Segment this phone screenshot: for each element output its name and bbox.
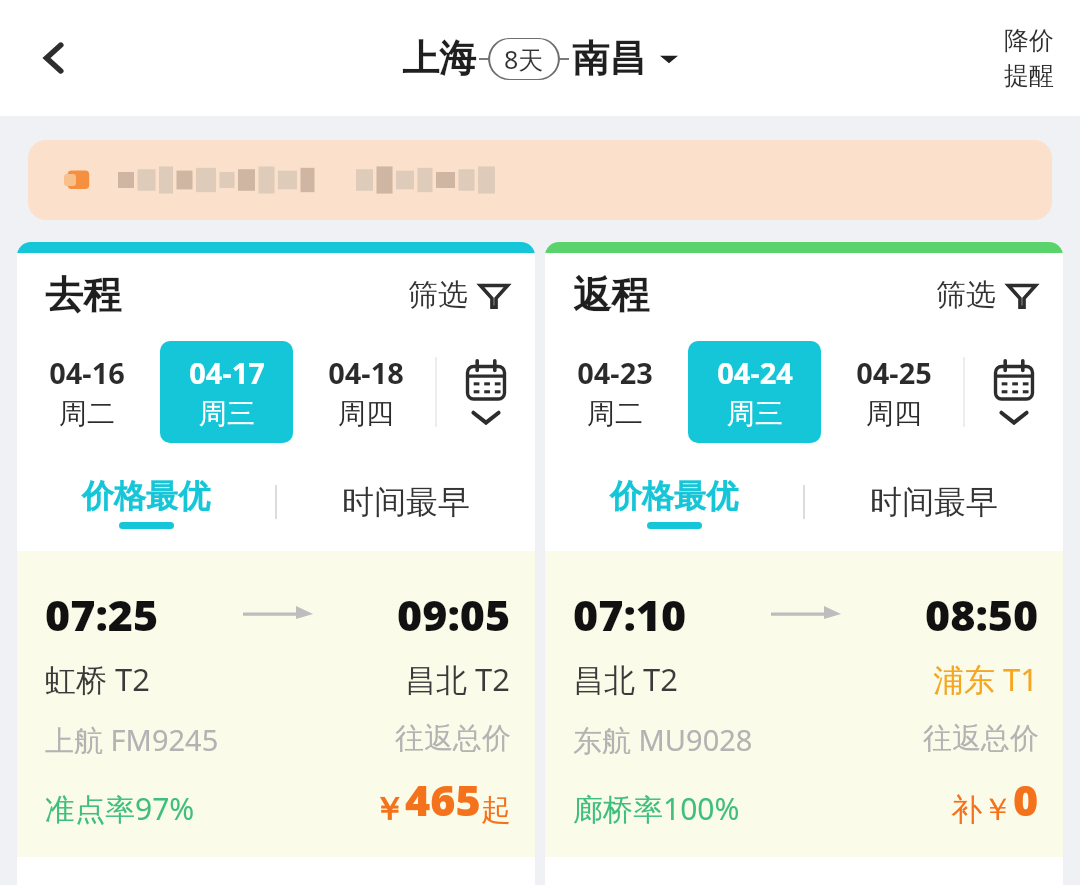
button[interactable]: 07:25 — [17, 551, 535, 857]
staticText: 8天 — [504, 42, 544, 76]
staticText: 周四 — [866, 396, 922, 431]
staticText: 04-23 — [577, 353, 653, 392]
button[interactable]: 时间最早 — [277, 463, 535, 541]
staticText: 降价 — [1004, 25, 1054, 56]
staticText: 04-18 — [328, 353, 404, 392]
staticText: 昌北 T2 — [405, 658, 511, 700]
staticText: 筛选 — [408, 276, 468, 314]
button[interactable]: 时间最早 — [805, 463, 1063, 541]
button[interactable]: 筛选 — [936, 276, 1039, 314]
staticText: 周四 — [338, 396, 394, 431]
button[interactable]: 上海 — [402, 35, 678, 82]
staticText: 上航 FM9245 — [45, 720, 219, 760]
button[interactable]: 降价 — [1004, 25, 1054, 91]
staticText: 浦东 T1 — [933, 658, 1039, 700]
button[interactable]: Calendar — [437, 341, 535, 443]
button[interactable]: 04-18 — [299, 341, 432, 443]
button[interactable]: 价格最优 — [17, 463, 275, 541]
staticText: 起 — [481, 791, 511, 829]
button[interactable]: 04-17 — [160, 341, 293, 443]
button[interactable]: 04-16 — [20, 341, 154, 443]
staticText: 准点率97% — [45, 788, 195, 829]
staticText: 往返总价 — [395, 720, 511, 757]
staticText: 465 — [405, 770, 481, 829]
staticText: 返程 — [573, 271, 649, 319]
staticText: 虹桥 T2 — [45, 658, 151, 700]
staticText: 往返总价 — [923, 720, 1039, 757]
staticText: 筛选 — [936, 276, 996, 314]
staticText: 周三 — [199, 396, 255, 431]
staticText: 去程 — [45, 271, 121, 319]
button[interactable]: 价格最优 — [545, 463, 803, 541]
staticText: 周二 — [59, 396, 115, 431]
staticText: 0 — [1013, 770, 1039, 829]
staticText: 周二 — [587, 396, 643, 431]
staticText: 提醒 — [1004, 60, 1054, 91]
staticText: 昌北 T2 — [573, 658, 679, 700]
staticText: 04-16 — [49, 353, 125, 392]
staticText: 补￥ — [951, 790, 1013, 829]
staticText: 时间最早 — [342, 482, 470, 522]
staticText: 周三 — [727, 396, 783, 431]
button[interactable]: 04-25 — [827, 341, 960, 443]
staticText: 09:05 — [397, 585, 511, 644]
button[interactable]: 04-24 — [688, 341, 821, 443]
staticText: 价格最优 — [610, 476, 738, 516]
staticText: 东航 MU9028 — [573, 720, 753, 760]
staticText: 价格最优 — [82, 476, 210, 516]
staticText: 04-25 — [856, 353, 932, 392]
button[interactable]: 04-23 — [548, 341, 682, 443]
button[interactable]: Back — [22, 26, 86, 90]
staticText: 上海 — [402, 35, 476, 82]
staticText: 08:50 — [925, 585, 1039, 644]
staticText: 04-24 — [717, 353, 793, 392]
staticText: 04-17 — [189, 353, 265, 392]
staticText: 时间最早 — [870, 482, 998, 522]
staticText: 南昌 — [572, 35, 646, 82]
staticText: 07:10 — [573, 585, 687, 644]
staticText: 07:25 — [45, 585, 159, 644]
button[interactable]: Promotion — [28, 140, 1052, 220]
button[interactable]: 筛选 — [408, 276, 511, 314]
button[interactable]: Calendar — [965, 341, 1063, 443]
button[interactable]: 07:10 — [545, 551, 1063, 857]
staticText: 廊桥率100% — [573, 788, 740, 829]
staticText: ￥ — [373, 789, 405, 829]
